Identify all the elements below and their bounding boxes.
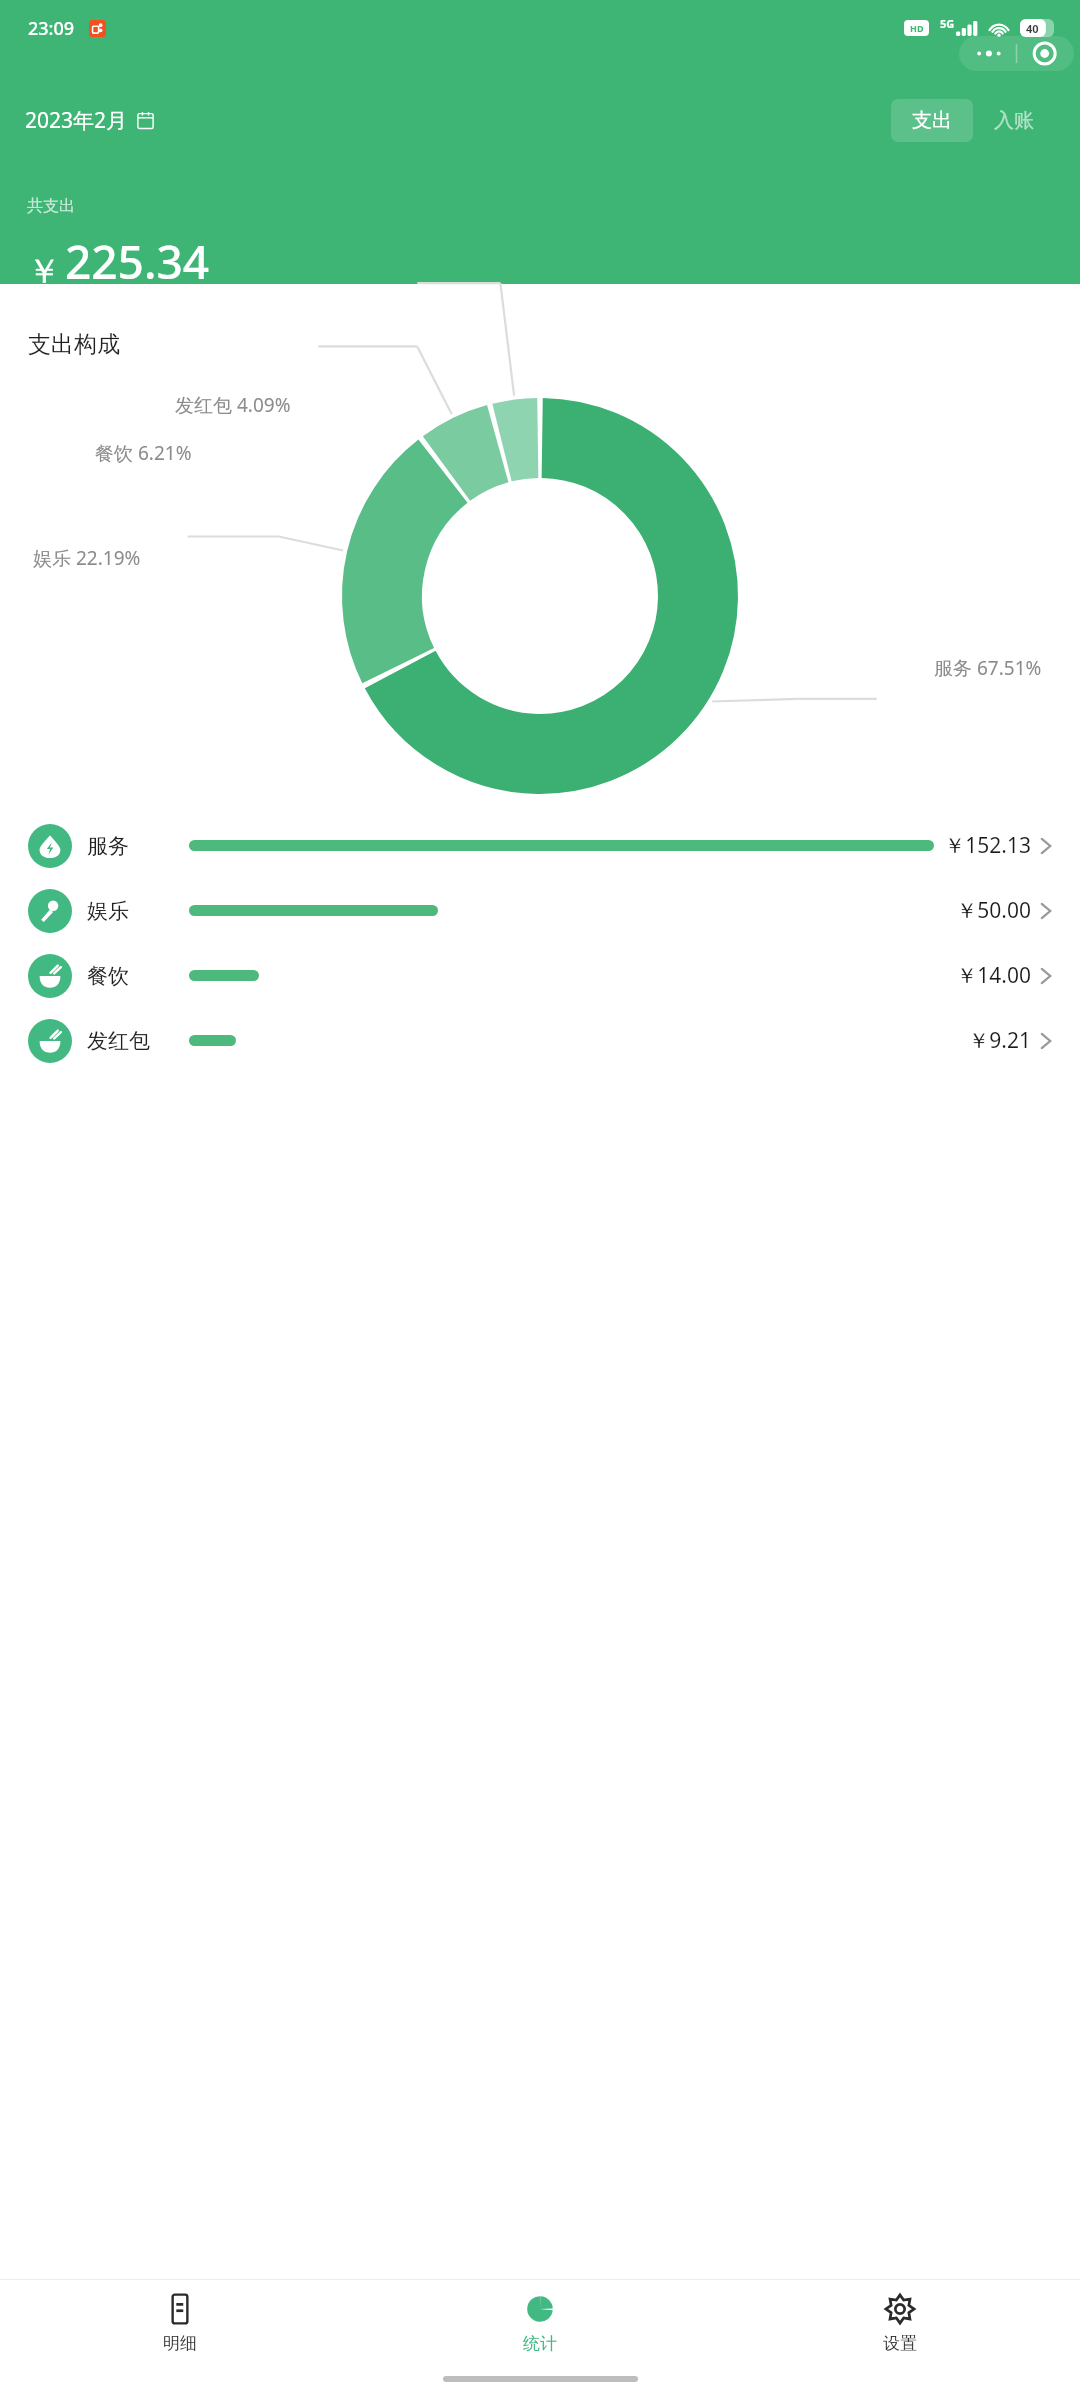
staticText: 统计 — [523, 2333, 557, 2354]
button[interactable]: More and Close — [959, 36, 1074, 71]
staticText: ￥ — [27, 250, 61, 293]
staticText: 发红包 4.09% — [175, 392, 291, 418]
staticText: 入账 — [994, 108, 1034, 133]
button[interactable]: 统计 — [360, 2280, 720, 2366]
staticText: 明细 — [163, 2333, 197, 2354]
button[interactable]: 2023年2月 — [25, 102, 155, 139]
staticText: ￥50.00 — [956, 896, 1031, 925]
staticText: 服务 — [87, 833, 165, 859]
staticText: ￥9.21 — [968, 1026, 1031, 1055]
button[interactable]: 明细 — [0, 2280, 360, 2366]
button[interactable]: 发红包 — [0, 1008, 1080, 1073]
staticText: 共支出 — [27, 196, 75, 216]
button[interactable]: 支出 — [891, 99, 973, 142]
staticText: 2023年2月 — [25, 106, 128, 135]
staticText: 餐饮 — [87, 963, 165, 989]
staticText: 225.34 — [65, 230, 210, 293]
staticText: 5G — [940, 16, 955, 31]
staticText: 40 — [1026, 21, 1039, 36]
staticText: 娱乐 — [87, 898, 165, 924]
staticText: HD — [910, 22, 924, 34]
staticText: 餐饮 6.21% — [95, 440, 192, 466]
staticText: 发红包 — [87, 1028, 165, 1054]
button[interactable]: 设置 — [720, 2280, 1080, 2366]
staticText: 服务 67.51% — [934, 655, 1042, 681]
button[interactable]: 娱乐 — [0, 878, 1080, 943]
staticText: 23:09 — [28, 16, 75, 41]
staticText: ￥152.13 — [944, 831, 1031, 860]
staticText: 支出构成 — [28, 330, 120, 359]
staticText: 支出 — [912, 108, 952, 133]
button[interactable]: 餐饮 — [0, 943, 1080, 1008]
button[interactable]: 服务 — [0, 813, 1080, 878]
staticText: ￥14.00 — [956, 961, 1031, 990]
staticText: 设置 — [883, 2333, 917, 2354]
button[interactable]: 入账 — [973, 99, 1055, 142]
staticText: 娱乐 22.19% — [33, 545, 141, 571]
